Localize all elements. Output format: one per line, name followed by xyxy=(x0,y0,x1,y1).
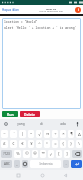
button[interactable]: Backspace xyxy=(72,150,82,158)
staticText: ✓ xyxy=(49,152,53,157)
button[interactable]: ° xyxy=(44,140,50,148)
staticText: Hapus iklan xyxy=(2,8,19,12)
staticText: . xyxy=(65,161,67,167)
button[interactable]: Recents xyxy=(13,170,23,180)
button[interactable]: = xyxy=(52,140,58,148)
staticText: location = "World" xyxy=(4,20,38,24)
staticText: ¢ xyxy=(12,141,15,147)
other: Ad logo xyxy=(75,7,81,13)
staticText: ABC xyxy=(4,162,10,166)
button[interactable]: , xyxy=(14,160,20,168)
button[interactable]: Delete xyxy=(20,111,40,117)
staticText: } xyxy=(70,141,72,147)
button[interactable]: × xyxy=(60,130,66,138)
button[interactable]: \ xyxy=(76,140,82,148)
staticText: % xyxy=(16,151,20,157)
staticText: ° xyxy=(46,141,48,147)
staticText: ™ xyxy=(41,151,45,157)
staticText: π xyxy=(46,131,49,137)
button[interactable]: € xyxy=(19,140,26,148)
staticText: = xyxy=(54,141,57,147)
staticText: yang xyxy=(17,122,25,126)
button[interactable]: ✓ xyxy=(48,150,54,158)
button[interactable]: ` xyxy=(10,130,17,138)
staticText: ` xyxy=(13,131,15,137)
staticText: [ xyxy=(58,151,60,157)
button[interactable]: ^ xyxy=(36,140,42,148)
staticText: alert 'Hello ' + location + ' is wrong' xyxy=(4,26,77,30)
button[interactable]: £ xyxy=(1,140,8,148)
button[interactable]: ABC xyxy=(1,160,12,168)
staticText: Iklan Ad xyxy=(46,7,56,10)
staticText: × xyxy=(62,131,65,137)
button[interactable]: di xyxy=(31,119,52,129)
button[interactable]: Voice input xyxy=(73,119,82,129)
button[interactable]: Emoji xyxy=(22,160,28,168)
staticText: { xyxy=(62,141,64,147)
button[interactable]: Home xyxy=(37,170,47,180)
button[interactable]: ¢ xyxy=(10,140,17,148)
staticText: ~ xyxy=(3,131,6,137)
button[interactable]: π xyxy=(44,130,50,138)
button[interactable]: Back xyxy=(60,170,70,180)
button[interactable]: • xyxy=(28,130,34,138)
button[interactable]: √ xyxy=(36,130,42,138)
staticText: ® xyxy=(33,151,37,157)
staticText: ] xyxy=(66,151,68,157)
button[interactable]: [ xyxy=(56,150,62,158)
staticText: √ xyxy=(38,132,41,137)
button[interactable]: % xyxy=(14,150,21,158)
button[interactable]: ÷ xyxy=(52,130,58,138)
staticText: ?123 xyxy=(3,152,10,156)
button[interactable]: ?123 xyxy=(1,150,12,158)
staticText: \ xyxy=(78,141,80,147)
button[interactable]: ∆ xyxy=(76,130,82,138)
button[interactable]: ] xyxy=(64,150,70,158)
button[interactable]: Settings xyxy=(1,119,11,129)
button[interactable]: ® xyxy=(32,150,38,158)
button[interactable]: ada xyxy=(52,119,73,129)
staticText: Trik Uji Kelancaran Inet xyxy=(39,10,63,13)
button[interactable]: { xyxy=(60,140,66,148)
button[interactable]: . xyxy=(63,160,69,168)
staticText: i xyxy=(78,8,79,12)
staticText: Run xyxy=(7,112,14,117)
button[interactable]: location = "World" xyxy=(2,18,81,109)
button[interactable]: Enter xyxy=(71,160,82,168)
staticText: Delete xyxy=(24,112,36,117)
button[interactable]: ™ xyxy=(40,150,46,158)
staticText: | xyxy=(21,131,24,137)
staticText: ÷ xyxy=(54,131,57,137)
staticText: £ xyxy=(3,141,6,147)
button[interactable]: © xyxy=(23,150,30,158)
staticText: Indonesia xyxy=(39,162,53,166)
button[interactable]: ~ xyxy=(1,130,8,138)
button[interactable]: ¶ xyxy=(68,130,74,138)
button[interactable]: yang xyxy=(11,119,31,129)
staticText: • xyxy=(30,131,32,137)
staticText: ∆ xyxy=(78,132,81,137)
button[interactable]: Indonesia xyxy=(30,160,61,168)
staticText: € xyxy=(21,141,24,147)
staticText: ^ xyxy=(38,141,41,147)
staticText: © xyxy=(25,151,29,157)
staticText: di xyxy=(40,122,43,126)
button[interactable]: } xyxy=(68,140,74,148)
staticText: ¶ xyxy=(70,131,73,137)
staticText: , xyxy=(16,161,18,167)
button[interactable]: Run xyxy=(2,111,18,117)
button[interactable]: Hapus iklan xyxy=(0,5,83,14)
staticText: ¥ xyxy=(30,141,33,147)
button[interactable]: ¥ xyxy=(28,140,34,148)
staticText: ada xyxy=(60,122,66,126)
button[interactable]: | xyxy=(19,130,26,138)
